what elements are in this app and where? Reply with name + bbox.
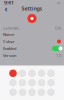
button[interactable]: Option xyxy=(19,88,26,96)
button[interactable]: Name xyxy=(3,31,61,38)
staticText: Edit xyxy=(55,25,61,31)
staticText: Colour xyxy=(3,39,15,44)
button[interactable]: Option xyxy=(9,69,17,77)
button[interactable]: Option xyxy=(28,88,36,96)
staticText: Name xyxy=(3,32,14,37)
staticText: Version xyxy=(3,53,16,58)
button[interactable]: Option xyxy=(28,79,36,86)
button[interactable]: Option xyxy=(47,69,55,77)
button[interactable]: Version xyxy=(3,52,61,59)
button[interactable]: Colour xyxy=(3,38,61,45)
button[interactable]: Option xyxy=(47,88,55,96)
button[interactable]: Option xyxy=(28,69,36,77)
staticText: Settings xyxy=(21,5,42,12)
staticText: 1.0 xyxy=(56,53,61,58)
button[interactable]: Option xyxy=(19,69,26,77)
button[interactable]: Option xyxy=(9,88,17,96)
button[interactable]: Option xyxy=(47,79,55,86)
button[interactable]: Option xyxy=(19,79,26,86)
button[interactable]: Option xyxy=(9,79,17,86)
staticText: ‹ xyxy=(4,2,7,15)
staticText: GENERAL xyxy=(3,25,20,31)
staticText: ··· xyxy=(57,0,60,6)
button[interactable]: Enabled xyxy=(3,45,61,52)
button[interactable]: Option xyxy=(38,88,45,96)
button[interactable]: Back xyxy=(2,5,10,12)
staticText: 9:41 xyxy=(4,0,14,6)
button[interactable]: Option xyxy=(38,69,45,77)
button[interactable]: Option xyxy=(38,79,45,86)
staticText: Enabled xyxy=(3,46,16,51)
